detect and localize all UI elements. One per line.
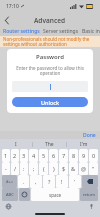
staticText: Enter the password to allow this operati… — [12, 65, 88, 77]
button[interactable]: @ — [79, 162, 88, 175]
button[interactable]: ! — [56, 175, 68, 188]
button[interactable]: 8 — [69, 149, 78, 162]
staticText: I — [15, 141, 17, 148]
staticText: ABC — [6, 192, 14, 197]
button[interactable]: Router settings — [3, 28, 40, 35]
staticText: @ — [81, 165, 86, 172]
button[interactable]: 1 — [2, 149, 10, 162]
staticText: : — [23, 165, 25, 172]
staticText: Router settings — [3, 28, 40, 35]
staticText: ; — [33, 165, 35, 172]
button[interactable]: I — [0, 139, 32, 149]
button[interactable]: & — [69, 162, 78, 175]
button[interactable]: ) — [49, 162, 58, 175]
button[interactable]: Basic information — [82, 28, 100, 35]
staticText: ) — [53, 165, 55, 172]
staticText: Unlock — [41, 99, 60, 106]
staticText: Advanced — [34, 16, 66, 25]
staticText: 17:10 — [6, 3, 19, 10]
staticText: The — [45, 141, 54, 148]
staticText: return — [83, 192, 95, 197]
button[interactable]: Server settings — [43, 28, 79, 35]
button[interactable]: return — [80, 188, 98, 201]
staticText: Server settings — [43, 28, 79, 35]
button[interactable]: " — [89, 162, 98, 175]
staticText: 5 — [42, 152, 46, 159]
staticText: Basic information — [82, 28, 100, 35]
staticText: & — [71, 165, 76, 172]
staticText: 6 — [52, 152, 56, 159]
button[interactable]: $ — [59, 162, 68, 175]
button[interactable]: 2 — [11, 149, 19, 162]
staticText: 4 — [32, 152, 36, 159]
button[interactable]: Unlock — [12, 97, 88, 107]
button[interactable]: 5 — [39, 149, 48, 162]
button[interactable]: I'm — [67, 139, 100, 149]
staticText: 0 — [92, 152, 96, 159]
button[interactable]: The — [33, 139, 66, 149]
staticText: 8 — [72, 152, 76, 159]
button[interactable]: space — [31, 188, 79, 201]
button[interactable]: / — [11, 162, 19, 175]
staticText: ' — [74, 178, 76, 185]
staticText: #+= — [6, 179, 14, 184]
staticText: ! — [61, 178, 63, 185]
button[interactable]: ? — [43, 175, 55, 188]
staticText: ? — [48, 178, 51, 185]
button[interactable]: Done — [83, 132, 96, 139]
staticText: , — [35, 178, 37, 185]
button[interactable]: 4 — [29, 149, 38, 162]
button[interactable]: Dictate — [89, 204, 94, 209]
button[interactable]: ; — [29, 162, 38, 175]
button[interactable]: 6 — [49, 149, 58, 162]
button[interactable]: ( — [39, 162, 48, 175]
button[interactable]: : — [20, 162, 28, 175]
button[interactable]: #+= — [2, 175, 17, 188]
button[interactable]: 0 — [89, 149, 98, 162]
button[interactable]: Back — [0, 13, 14, 27]
button[interactable]: 9 — [79, 149, 88, 162]
button[interactable]: ABC — [2, 188, 18, 201]
staticText: Non-professionals should not modify the … — [3, 36, 97, 47]
staticText: $ — [62, 165, 66, 172]
staticText: Password — [12, 53, 88, 61]
button[interactable] — [12, 81, 88, 92]
staticText: Done — [83, 132, 96, 139]
button[interactable]: Backspace — [82, 175, 98, 188]
staticText: I'm — [80, 141, 88, 148]
staticText: - — [5, 165, 7, 172]
staticText: 1 — [4, 152, 8, 159]
staticText: . — [23, 178, 25, 185]
staticText: 2 — [13, 152, 17, 159]
button[interactable]: Change keyboard — [6, 204, 11, 209]
button[interactable]: 3 — [20, 149, 28, 162]
button[interactable]: Emoji — [19, 188, 30, 201]
button[interactable]: - — [2, 162, 10, 175]
staticText: space — [49, 192, 62, 198]
staticText: 9 — [82, 152, 86, 159]
staticText: 7 — [62, 152, 66, 159]
staticText: ( — [43, 165, 45, 172]
button[interactable]: , — [30, 175, 42, 188]
staticText: / — [14, 165, 17, 172]
staticText: 3 — [22, 152, 26, 159]
staticText: " — [92, 165, 95, 172]
button[interactable]: . — [18, 175, 29, 188]
button[interactable]: 7 — [59, 149, 68, 162]
button[interactable]: ' — [69, 175, 81, 188]
